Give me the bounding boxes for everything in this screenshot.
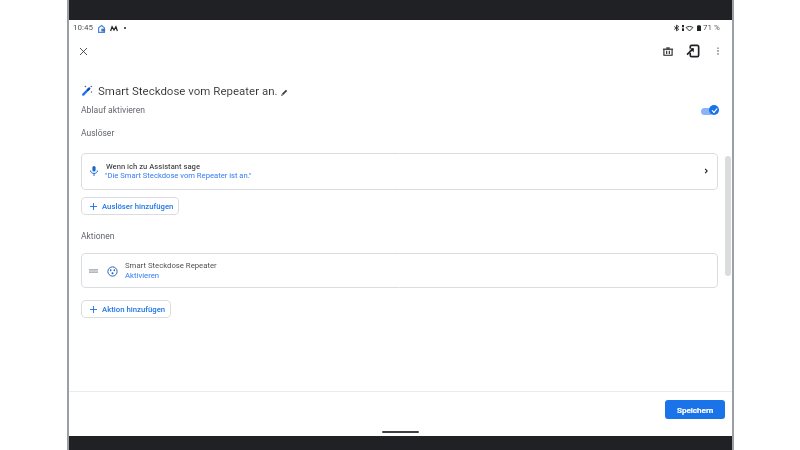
staticText: Speichern [677, 405, 714, 414]
button[interactable]: Schließen [73, 41, 93, 61]
button[interactable]: Umbenennen [278, 86, 290, 98]
button[interactable]: Wenn ich zu Assistant sage [81, 153, 718, 190]
staticText: Aktion hinzufügen [102, 305, 166, 314]
button[interactable]: Speichern [665, 400, 725, 419]
button[interactable]: Aktion hinzufügen [81, 300, 171, 318]
staticText: 10:45 [73, 23, 93, 32]
button[interactable]: Löschen [658, 41, 678, 61]
staticText: Aktivieren [125, 271, 160, 280]
staticText: Ablauf aktivieren [81, 105, 145, 115]
staticText: 71 % [703, 23, 720, 32]
button[interactable]: Ablauf aktivieren [701, 104, 719, 115]
button[interactable]: Smart Steckdose Repeater [81, 253, 718, 288]
staticText: Aktionen [81, 231, 115, 241]
staticText: Auslöser [81, 128, 115, 138]
staticText: Smart Steckdose Repeater [125, 261, 217, 270]
staticText: Wenn ich zu Assistant sage [106, 162, 200, 171]
staticText: Auslöser hinzufügen [102, 202, 174, 211]
button[interactable]: Weitere Optionen [708, 41, 728, 61]
staticText: "Die Smart Steckdose vom Repeater ist an… [105, 171, 252, 180]
button[interactable]: An Gerät senden [683, 41, 703, 61]
staticText: Smart Steckdose vom Repeater an. [98, 84, 278, 97]
button[interactable]: Auslöser hinzufügen [81, 197, 179, 215]
